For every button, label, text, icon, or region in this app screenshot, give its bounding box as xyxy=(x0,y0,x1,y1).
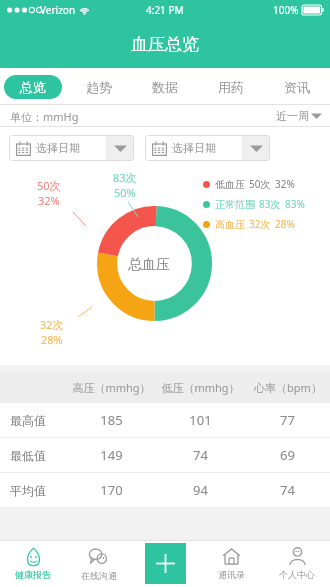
staticText: 101 xyxy=(189,411,212,429)
button[interactable]: 资讯 xyxy=(264,68,330,105)
button[interactable]: 选择日期 xyxy=(145,135,270,161)
staticText: 83次 xyxy=(113,170,137,185)
staticText: 高压（mmhg） xyxy=(72,380,151,395)
staticText: 185 xyxy=(100,411,123,429)
button[interactable]: 在线沟通 xyxy=(66,540,132,587)
staticText: 最低值 xyxy=(10,448,46,463)
button[interactable]: 近一周 xyxy=(276,109,322,123)
staticText: 69 xyxy=(280,446,295,464)
staticText: 32次 xyxy=(249,217,271,231)
button[interactable]: 数据 xyxy=(132,68,198,105)
staticText: 在线沟通 xyxy=(81,570,117,581)
staticText: 28% xyxy=(275,217,295,231)
button[interactable]: 趋势 xyxy=(66,68,132,105)
button[interactable]: 健康报告 xyxy=(0,540,66,587)
button[interactable]: Add xyxy=(145,543,186,584)
staticText: 149 xyxy=(100,446,123,464)
staticText: 资讯 xyxy=(284,79,310,95)
staticText: 100% xyxy=(273,3,299,17)
button[interactable]: 选择日期 xyxy=(9,135,134,161)
staticText: 32% xyxy=(275,177,295,191)
staticText: 28% xyxy=(41,332,63,347)
staticText: 低血压 xyxy=(215,178,245,191)
staticText: 4:21 PM xyxy=(146,3,184,17)
staticText: 个人中心 xyxy=(279,569,315,580)
button[interactable]: 用药 xyxy=(198,68,264,105)
staticText: 32次 xyxy=(40,317,64,332)
staticText: 用药 xyxy=(218,79,244,95)
staticText: 77 xyxy=(280,411,295,429)
button[interactable]: 个人中心 xyxy=(264,540,330,587)
staticText: 50% xyxy=(114,185,136,200)
staticText: 32% xyxy=(38,193,60,208)
staticText: 近一周 xyxy=(276,109,309,123)
button[interactable]: 最低值 xyxy=(0,438,330,472)
staticText: 50次 xyxy=(37,178,61,193)
button[interactable]: 通讯录 xyxy=(198,540,264,587)
button[interactable]: 最高值 xyxy=(0,403,330,437)
staticText: 心率（bpm） xyxy=(254,380,322,395)
staticText: 低压（mmhg） xyxy=(161,380,240,395)
staticText: 74 xyxy=(193,446,208,464)
staticText: 血压总览 xyxy=(131,34,199,55)
staticText: 通讯录 xyxy=(218,569,245,580)
staticText: 170 xyxy=(100,481,123,499)
staticText: 正常范围 xyxy=(215,198,255,211)
staticText: 趋势 xyxy=(86,79,112,95)
staticText: 总血压 xyxy=(128,256,170,274)
staticText: 83% xyxy=(285,197,305,211)
staticText: 总览 xyxy=(20,79,46,95)
staticText: 单位：mmHg xyxy=(10,109,79,124)
staticText: Verizon xyxy=(40,3,76,17)
staticText: 83次 xyxy=(259,197,281,211)
staticText: 健康报告 xyxy=(15,569,51,580)
staticText: 平均值 xyxy=(10,483,46,498)
staticText: 74 xyxy=(280,481,295,499)
staticText: 选择日期 xyxy=(36,141,80,155)
staticText: 选择日期 xyxy=(172,141,216,155)
button[interactable]: 平均值 xyxy=(0,473,330,507)
staticText: 50次 xyxy=(249,177,271,191)
staticText: 高血压 xyxy=(215,218,245,231)
staticText: 最高值 xyxy=(10,413,46,428)
staticText: 94 xyxy=(193,481,208,499)
button[interactable]: 总览 xyxy=(0,68,66,105)
staticText: 数据 xyxy=(152,79,178,95)
